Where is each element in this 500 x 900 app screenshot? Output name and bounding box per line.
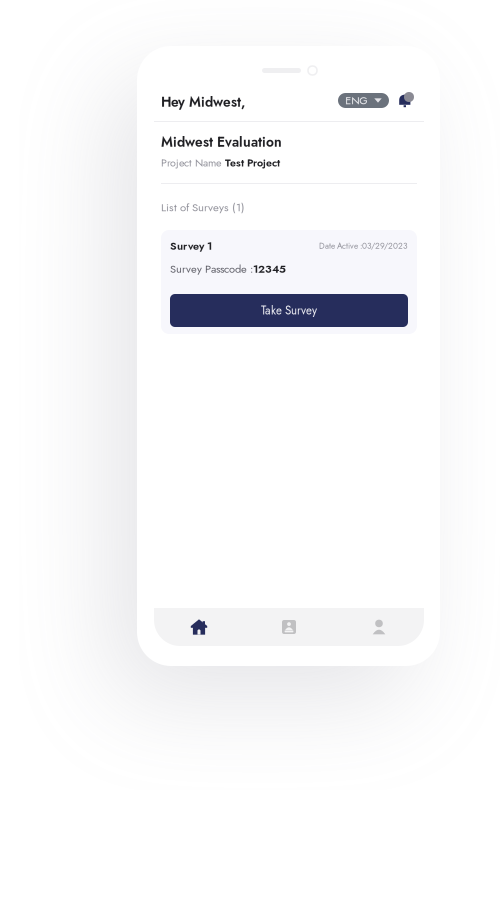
staticText: Project Name (161, 155, 221, 170)
staticText: Survey Passcode : (170, 261, 253, 277)
staticText: Take Survey (261, 302, 317, 319)
staticText: Survey 1 (170, 238, 212, 254)
staticText: 12345 (253, 261, 286, 277)
button[interactable]: Surveys (244, 608, 334, 646)
staticText: List of Surveys (1) (161, 199, 245, 215)
staticText: Date Active :03/29/2023 (319, 240, 408, 252)
button[interactable]: Take Survey (170, 294, 408, 327)
button[interactable]: Notifications (398, 94, 416, 110)
staticText: Midwest Evaluation (161, 132, 282, 152)
staticText: Test Project (225, 155, 280, 170)
staticText: ENG (345, 93, 367, 108)
button[interactable]: ENG (338, 93, 389, 108)
button[interactable]: Home (154, 608, 244, 646)
staticText: Hey Midwest, (161, 92, 245, 112)
button[interactable]: Profile (334, 608, 424, 646)
